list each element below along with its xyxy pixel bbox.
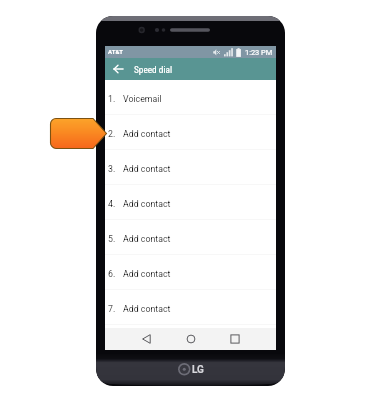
staticText: 3. bbox=[108, 164, 123, 174]
button[interactable]: Recents bbox=[219, 328, 250, 350]
staticText: 1:23 PM bbox=[245, 48, 273, 57]
staticText: Add contact bbox=[123, 304, 171, 314]
button[interactable]: Back bbox=[108, 58, 128, 80]
button[interactable]: 2. bbox=[105, 115, 276, 150]
button[interactable]: 3. bbox=[105, 150, 276, 185]
button[interactable]: 4. bbox=[105, 185, 276, 220]
staticText: AT&T bbox=[108, 48, 124, 55]
button[interactable]: 7. bbox=[105, 290, 276, 325]
staticText: Add contact bbox=[123, 234, 171, 244]
button[interactable]: Back bbox=[131, 328, 162, 350]
staticText: 4. bbox=[108, 199, 123, 209]
staticText: Add contact bbox=[123, 129, 171, 139]
staticText: 2. bbox=[108, 129, 123, 139]
button[interactable]: 5. bbox=[105, 220, 276, 255]
staticText: 5. bbox=[108, 234, 123, 244]
button[interactable]: Home bbox=[175, 328, 206, 350]
staticText: Voicemail bbox=[123, 94, 162, 104]
staticText: Add contact bbox=[123, 269, 171, 279]
staticText: 7. bbox=[108, 304, 123, 314]
staticText: 6. bbox=[108, 269, 123, 279]
staticText: LG bbox=[192, 364, 204, 376]
button[interactable]: 1. bbox=[105, 80, 276, 115]
button[interactable]: Callout pointer bbox=[50, 118, 107, 149]
button[interactable]: 6. bbox=[105, 255, 276, 290]
staticText: 1. bbox=[108, 94, 123, 104]
staticText: Speed dial bbox=[134, 64, 173, 75]
staticText: Add contact bbox=[123, 199, 171, 209]
staticText: Add contact bbox=[123, 164, 171, 174]
